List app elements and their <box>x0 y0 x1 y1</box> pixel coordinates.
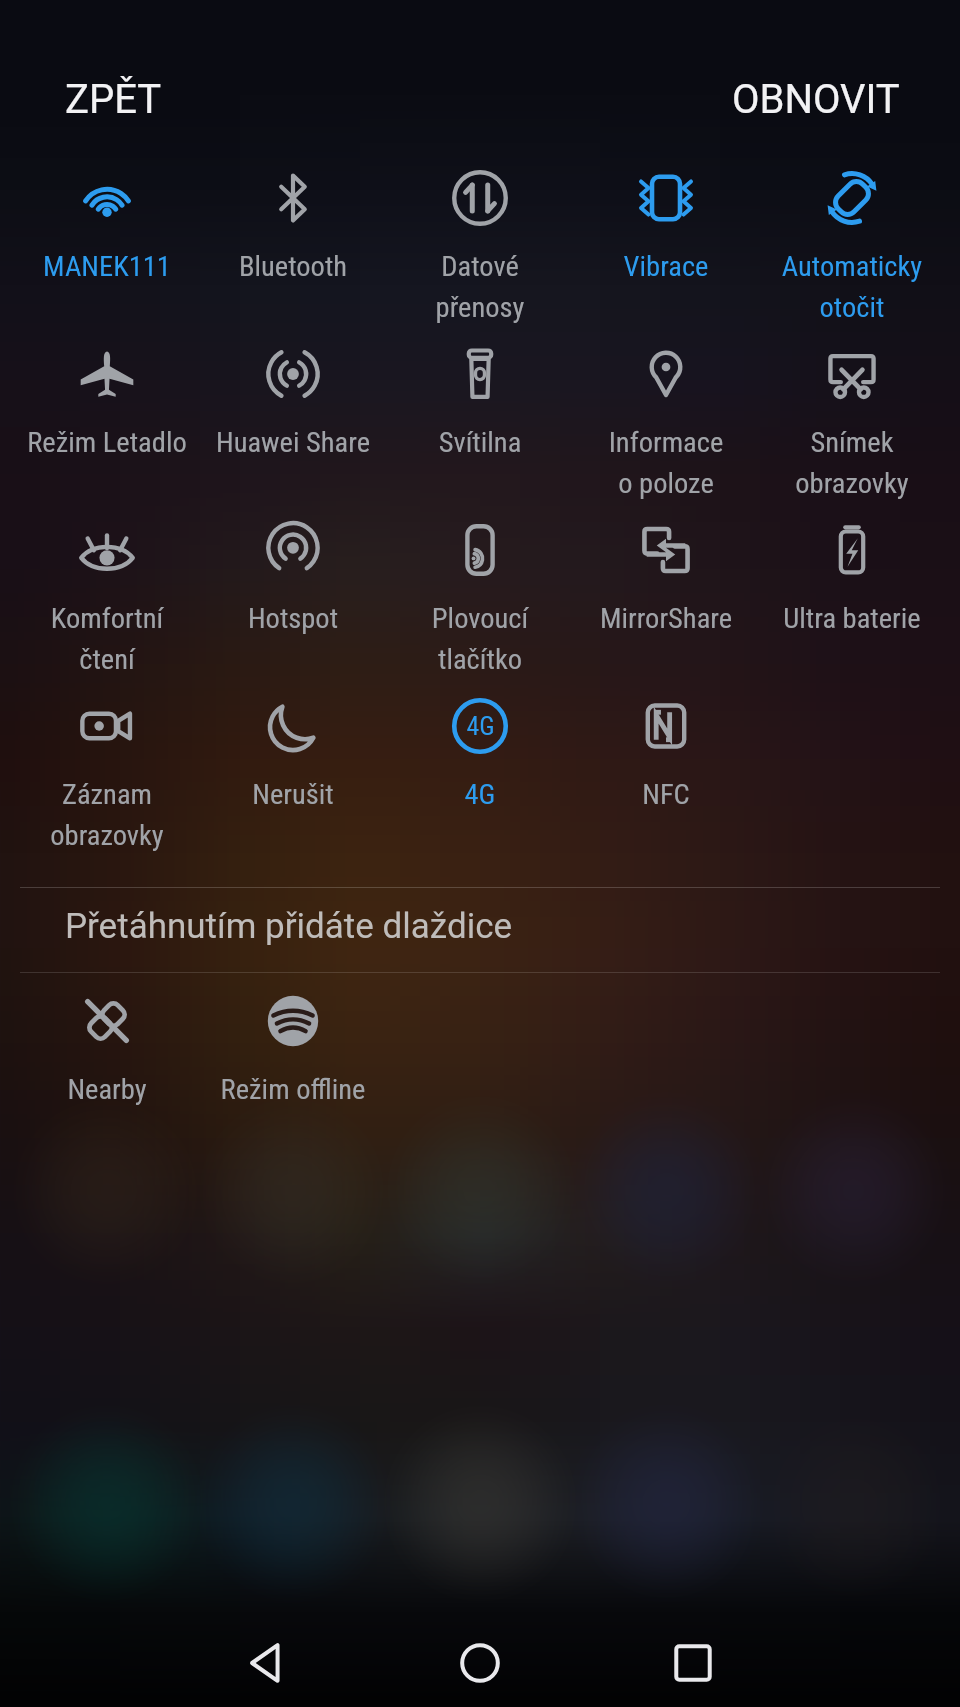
staticText: Datové přenosy <box>387 250 573 324</box>
button[interactable]: Home <box>426 1613 534 1707</box>
button[interactable]: Snímek obrazovky <box>759 346 945 498</box>
staticText: Svítilna <box>387 426 573 459</box>
button[interactable]: Nearby <box>14 993 200 1145</box>
button[interactable]: ZPĚT <box>30 58 197 141</box>
staticText: Záznam obrazovky <box>14 778 200 852</box>
button[interactable]: Režim offline <box>200 993 386 1145</box>
button[interactable]: Komfortní čtení <box>14 522 200 674</box>
staticText: 4G <box>387 778 573 811</box>
staticText: Hotspot <box>200 602 386 635</box>
staticText: Snímek obrazovky <box>759 426 945 500</box>
button[interactable]: Svítilna <box>387 346 573 498</box>
staticText: Bluetooth <box>200 250 386 283</box>
staticText: MirrorShare <box>573 602 759 635</box>
staticText: Nearby <box>14 1073 200 1106</box>
button[interactable]: Huawei Share <box>200 346 386 498</box>
button[interactable]: Back <box>213 1613 321 1707</box>
staticText: Automaticky otočit <box>759 250 945 324</box>
button[interactable]: Hotspot <box>200 522 386 674</box>
staticText: Informace o poloze <box>573 426 759 500</box>
button[interactable]: Ultra baterie <box>759 522 945 674</box>
button[interactable]: 4G <box>387 698 573 850</box>
button[interactable]: Nerušit <box>200 698 386 850</box>
staticText: Režim Letadlo <box>14 426 200 459</box>
staticText: Přetáhnutím přidáte dlaždice <box>65 906 513 947</box>
button[interactable]: MANEK111 <box>14 170 200 322</box>
button[interactable]: OBNOVIT <box>700 58 932 141</box>
button[interactable]: Režim Letadlo <box>14 346 200 498</box>
button[interactable]: Plovoucí tlačítko <box>387 522 573 674</box>
staticText: MANEK111 <box>14 250 200 283</box>
button[interactable]: Recent apps <box>639 1613 747 1707</box>
button[interactable]: Záznam obrazovky <box>14 698 200 850</box>
staticText: ZPĚT <box>65 76 162 123</box>
button[interactable]: Automaticky otočit <box>759 170 945 322</box>
staticText: Ultra baterie <box>759 602 945 635</box>
button[interactable]: Datové přenosy <box>387 170 573 322</box>
staticText: 4G <box>466 711 495 741</box>
button[interactable]: Bluetooth <box>200 170 386 322</box>
staticText: OBNOVIT <box>732 76 900 123</box>
staticText: Režim offline <box>200 1073 386 1106</box>
staticText: Plovoucí tlačítko <box>387 602 573 676</box>
button[interactable]: MirrorShare <box>573 522 759 674</box>
button[interactable]: Vibrace <box>573 170 759 322</box>
button[interactable]: Informace o poloze <box>573 346 759 498</box>
staticText: NFC <box>573 778 759 811</box>
staticText: Komfortní čtení <box>14 602 200 676</box>
staticText: Nerušit <box>200 778 386 811</box>
staticText: Vibrace <box>573 250 759 283</box>
staticText: Huawei Share <box>200 426 386 459</box>
button[interactable]: NFC <box>573 698 759 850</box>
